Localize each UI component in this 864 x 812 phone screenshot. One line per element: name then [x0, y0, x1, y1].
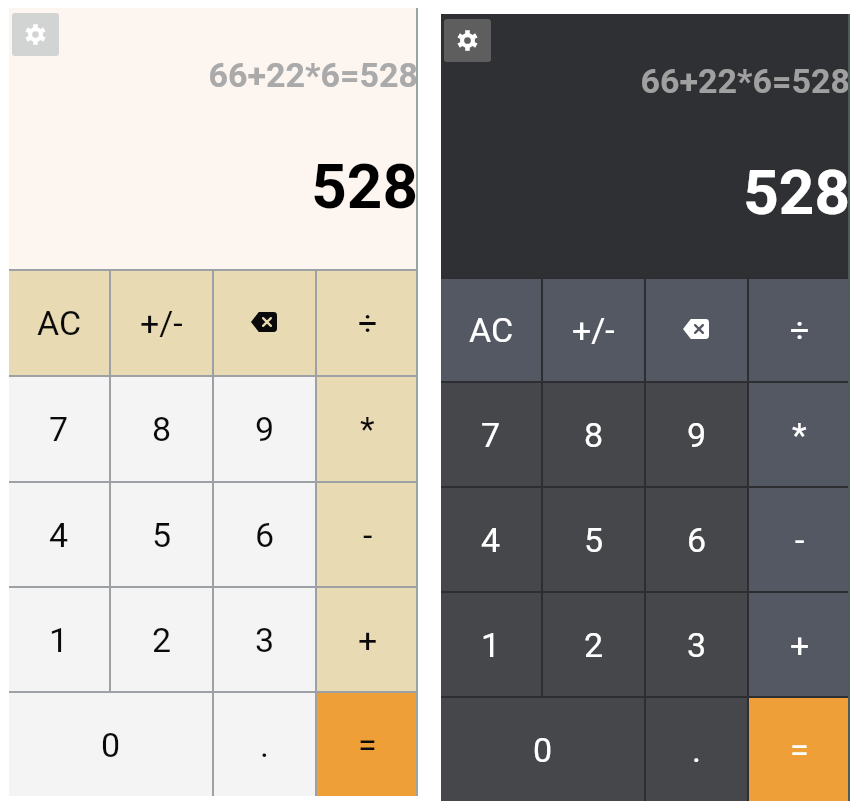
staticText: 0 [101, 725, 121, 765]
button[interactable]: Backspace [214, 271, 315, 375]
staticText: 528 [311, 150, 418, 223]
staticText: AC [469, 310, 514, 350]
staticText: +/- [140, 303, 183, 343]
button[interactable]: 0 [441, 698, 644, 801]
staticText: AC [37, 303, 82, 343]
staticText: 3 [255, 620, 275, 660]
staticText: = [358, 725, 377, 765]
button[interactable]: 1 [441, 593, 541, 696]
button[interactable]: = [749, 698, 850, 801]
staticText: 6 [255, 515, 275, 555]
button[interactable]: AC [9, 271, 109, 375]
button[interactable]: 2 [111, 588, 212, 691]
button[interactable]: 9 [646, 383, 747, 486]
staticText: . [260, 725, 269, 765]
staticText: 6 [687, 520, 707, 560]
staticText: ÷ [790, 310, 810, 350]
button[interactable]: Settings [444, 19, 491, 62]
button[interactable]: AC [441, 279, 541, 381]
staticText: 0 [533, 730, 553, 770]
staticText: - [363, 515, 373, 555]
button[interactable]: - [749, 488, 850, 591]
button[interactable]: +/- [543, 279, 644, 381]
staticText: 7 [481, 415, 501, 455]
staticText: 8 [584, 415, 604, 455]
button[interactable]: . [214, 693, 315, 796]
button[interactable]: * [317, 377, 418, 481]
other: Backspace [251, 312, 277, 332]
button[interactable]: = [317, 693, 418, 796]
staticText: +/- [572, 310, 615, 350]
button[interactable]: 4 [9, 483, 109, 586]
staticText: 66+22*6=528 [208, 55, 418, 95]
button[interactable]: 5 [111, 483, 212, 586]
button[interactable]: 3 [214, 588, 315, 691]
staticText: 4 [49, 515, 69, 555]
staticText: 4 [481, 520, 501, 560]
staticText: 528 [743, 156, 850, 229]
staticText: 1 [49, 620, 69, 660]
staticText: + [358, 620, 378, 660]
button[interactable]: +/- [111, 271, 212, 375]
staticText: 5 [152, 515, 172, 555]
button[interactable]: ÷ [317, 271, 418, 375]
button[interactable]: 9 [214, 377, 315, 481]
staticText: = [790, 730, 809, 770]
staticText: - [795, 520, 805, 560]
staticText: + [790, 625, 810, 665]
staticText: 9 [687, 415, 707, 455]
staticText: . [692, 730, 701, 770]
button[interactable]: 7 [9, 377, 109, 481]
button[interactable]: 1 [9, 588, 109, 691]
button[interactable]: Backspace [646, 279, 747, 381]
staticText: 2 [584, 625, 604, 665]
staticText: 1 [481, 625, 501, 665]
staticText: 5 [584, 520, 604, 560]
button[interactable]: 0 [9, 693, 212, 796]
button[interactable]: 6 [646, 488, 747, 591]
staticText: ÷ [358, 303, 378, 343]
button[interactable]: 8 [543, 383, 644, 486]
button[interactable]: 2 [543, 593, 644, 696]
button[interactable]: Settings [12, 13, 59, 56]
button[interactable]: 3 [646, 593, 747, 696]
button[interactable]: * [749, 383, 850, 486]
button[interactable]: 8 [111, 377, 212, 481]
button[interactable]: 6 [214, 483, 315, 586]
staticText: 66+22*6=528 [640, 61, 850, 101]
button[interactable]: - [317, 483, 418, 586]
button[interactable]: 5 [543, 488, 644, 591]
staticText: 3 [687, 625, 707, 665]
button[interactable]: + [749, 593, 850, 696]
button[interactable]: + [317, 588, 418, 691]
button[interactable]: 4 [441, 488, 541, 591]
staticText: 8 [152, 409, 172, 449]
staticText: * [360, 409, 375, 449]
button[interactable]: ÷ [749, 279, 850, 381]
button[interactable]: 7 [441, 383, 541, 486]
staticText: * [792, 415, 807, 455]
other: Backspace [683, 319, 709, 339]
staticText: 2 [152, 620, 172, 660]
staticText: 7 [49, 409, 69, 449]
staticText: 9 [255, 409, 275, 449]
button[interactable]: . [646, 698, 747, 801]
